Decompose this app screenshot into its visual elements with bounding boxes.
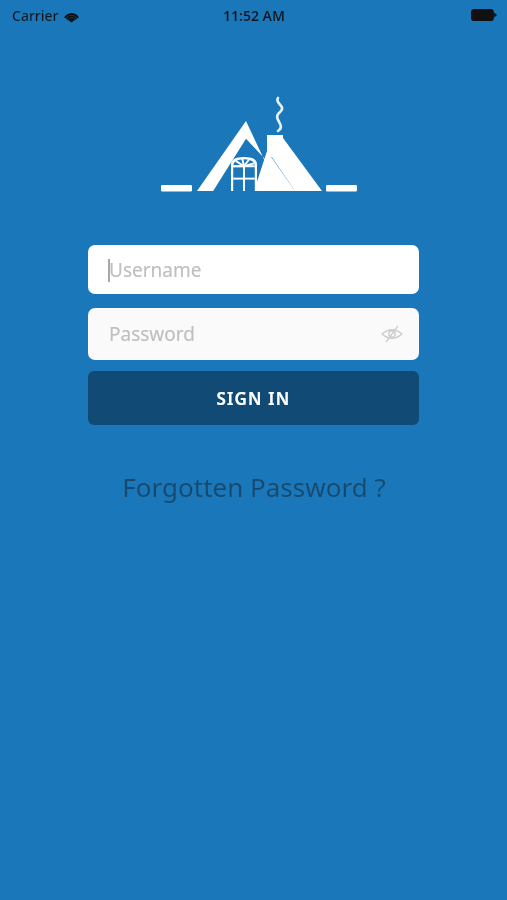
button[interactable]: Username	[88, 245, 419, 294]
button[interactable]: Forgotten Password ?	[0, 469, 507, 504]
staticText: Forgotten Password ?	[122, 469, 386, 504]
staticText: Carrier	[12, 6, 59, 25]
staticText: 11:52 AM	[223, 6, 285, 25]
staticText: Password	[109, 321, 195, 347]
button[interactable]: Show password	[376, 318, 408, 350]
button[interactable]: SIGN IN	[88, 371, 419, 425]
staticText: Username	[109, 257, 202, 283]
staticText: SIGN IN	[216, 387, 291, 410]
button[interactable]: Password	[88, 308, 419, 360]
